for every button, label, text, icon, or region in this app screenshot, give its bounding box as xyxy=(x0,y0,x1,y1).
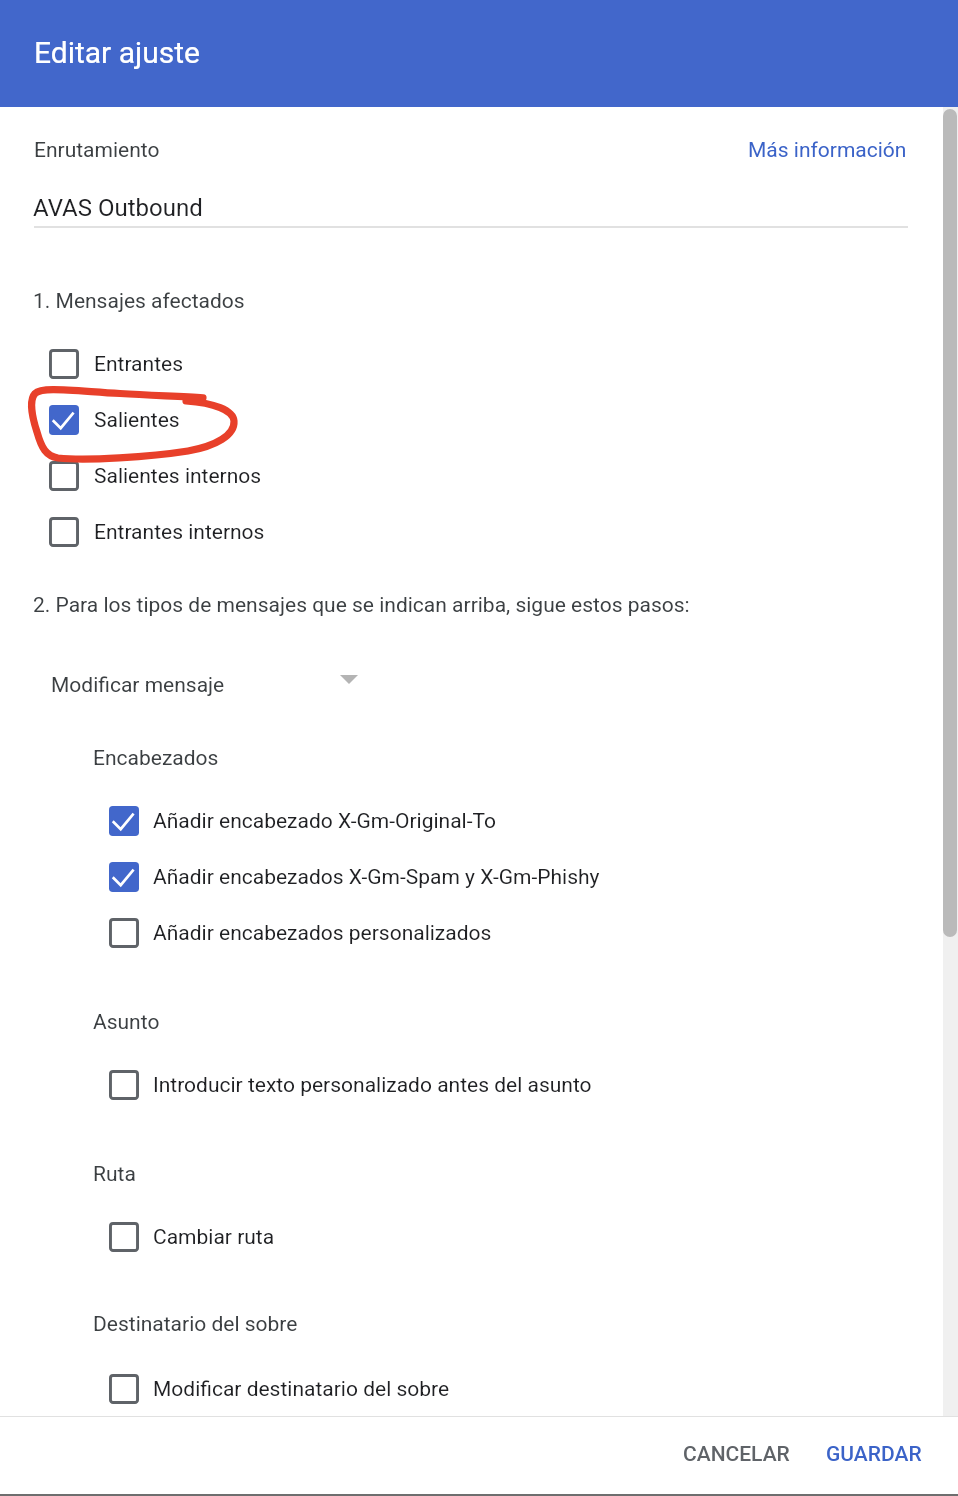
staticText: Entrantes xyxy=(94,352,183,377)
button[interactable]: Entrantes internos xyxy=(0,504,908,560)
staticText: AVAS Outbound xyxy=(33,194,203,222)
staticText: Entrantes internos xyxy=(94,520,265,545)
button[interactable]: Más información xyxy=(737,127,917,171)
staticText: Salientes xyxy=(94,408,180,433)
staticText: Encabezados xyxy=(93,746,219,771)
button[interactable]: Modificar mensaje xyxy=(40,661,370,706)
staticText: Ruta xyxy=(93,1162,136,1187)
button[interactable]: Añadir encabezados X-Gm-Spam y X-Gm-Phis… xyxy=(0,849,908,905)
button[interactable]: Salientes xyxy=(0,392,908,448)
staticText: Añadir encabezados X-Gm-Spam y X-Gm-Phis… xyxy=(153,865,600,890)
staticText: Más información xyxy=(748,138,907,163)
staticText: Destinatario del sobre xyxy=(93,1312,298,1337)
staticText: Salientes internos xyxy=(94,464,262,489)
staticText: 1. Mensajes afectados xyxy=(33,289,245,314)
staticText: Editar ajuste xyxy=(34,35,200,70)
button[interactable]: Añadir encabezado X-Gm-Original-To xyxy=(0,793,908,849)
staticText: CANCELAR xyxy=(683,1442,790,1467)
staticText: Añadir encabezados personalizados xyxy=(153,921,492,946)
staticText: Asunto xyxy=(93,1010,160,1035)
staticText: GUARDAR xyxy=(826,1442,922,1467)
button[interactable]: Modificar destinatario del sobre xyxy=(0,1361,908,1417)
staticText: Cambiar ruta xyxy=(153,1225,275,1250)
staticText: Modificar destinatario del sobre xyxy=(153,1377,450,1402)
staticText: Enrutamiento xyxy=(34,138,160,163)
staticText: Añadir encabezado X-Gm-Original-To xyxy=(153,809,496,834)
button[interactable]: Cambiar ruta xyxy=(0,1209,908,1265)
button[interactable]: CANCELAR xyxy=(667,1428,807,1480)
staticText: Modificar mensaje xyxy=(51,673,225,698)
button[interactable]: Entrantes xyxy=(0,336,908,392)
staticText: 2. Para los tipos de mensajes que se ind… xyxy=(33,593,690,618)
button[interactable]: Salientes internos xyxy=(0,448,908,504)
staticText: Introducir texto personalizado antes del… xyxy=(153,1073,592,1098)
button[interactable]: Añadir encabezados personalizados xyxy=(0,905,908,961)
button[interactable]: Introducir texto personalizado antes del… xyxy=(0,1057,908,1113)
button[interactable]: GUARDAR xyxy=(810,1428,938,1480)
